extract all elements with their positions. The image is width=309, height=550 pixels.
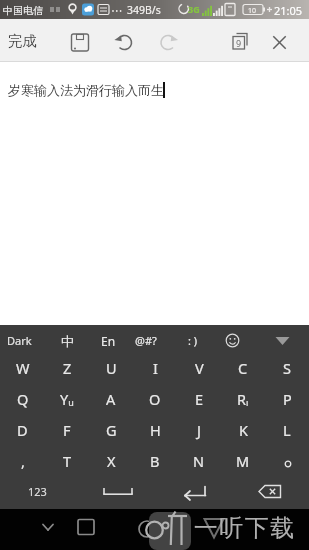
staticText: Rı — [237, 389, 249, 409]
staticText: 岁寒输入法为滑行输入而生 — [8, 82, 164, 98]
button[interactable]: J — [177, 414, 221, 445]
button[interactable]: 一听下载 — [193, 513, 295, 543]
staticText: C — [238, 358, 248, 378]
button[interactable]: S — [265, 352, 309, 383]
staticText: X — [107, 451, 116, 471]
button[interactable]: Yu — [45, 383, 89, 414]
button[interactable]: O — [133, 383, 177, 414]
staticText: M — [236, 451, 250, 471]
button[interactable]: C — [221, 352, 265, 383]
button[interactable]: @#? — [129, 327, 163, 354]
button[interactable] — [217, 327, 247, 354]
staticText: H — [150, 420, 161, 440]
button[interactable]: M — [221, 445, 265, 476]
staticText: Dark — [7, 333, 32, 348]
button[interactable]: G — [89, 414, 133, 445]
button[interactable]: 完成 — [0, 19, 48, 62]
staticText: G — [106, 420, 117, 440]
button[interactable] — [267, 327, 297, 354]
button[interactable]: En — [93, 327, 123, 354]
staticText: 9 — [236, 37, 242, 49]
button[interactable] — [75, 476, 160, 507]
staticText: @#? — [135, 333, 157, 348]
staticText: E — [195, 389, 204, 409]
button[interactable]: 123 — [0, 476, 75, 507]
button[interactable]: L — [265, 414, 309, 445]
button[interactable]: N — [177, 445, 221, 476]
staticText: S — [283, 358, 291, 378]
button[interactable]: , — [0, 445, 45, 476]
staticText: F — [63, 420, 71, 440]
staticText: 123 — [28, 484, 47, 499]
button[interactable]: E — [177, 383, 221, 414]
button[interactable] — [160, 476, 230, 507]
button[interactable]: V — [177, 352, 221, 383]
button[interactable] — [230, 476, 309, 507]
button[interactable] — [28, 515, 68, 545]
button[interactable]: H — [133, 414, 177, 445]
staticText: O — [149, 389, 161, 409]
staticText: 21:05 — [274, 3, 303, 18]
button[interactable]: I — [133, 352, 177, 383]
button[interactable]: F — [45, 414, 89, 445]
staticText: I — [153, 358, 158, 378]
button[interactable]: Z — [45, 352, 89, 383]
button[interactable]: : ) — [178, 327, 208, 354]
button[interactable]: Q — [0, 383, 45, 414]
staticText: Q — [17, 389, 29, 409]
staticText: 10 — [248, 6, 257, 16]
button[interactable] — [149, 512, 191, 550]
button[interactable]: T — [45, 445, 89, 476]
button[interactable]: X — [89, 445, 133, 476]
button[interactable]: P — [265, 383, 309, 414]
staticText: A — [106, 389, 116, 409]
button[interactable] — [265, 445, 309, 476]
button[interactable]: Dark — [1, 327, 37, 354]
button[interactable]: 中 — [52, 327, 82, 354]
staticText: V — [195, 358, 204, 378]
staticText: En — [101, 333, 116, 349]
staticText: K — [239, 420, 248, 440]
staticText: T — [63, 451, 72, 471]
button[interactable] — [66, 515, 106, 545]
staticText: B — [150, 451, 160, 471]
button[interactable]: W — [0, 352, 45, 383]
staticText: 中国电信 — [3, 4, 43, 17]
button[interactable]: Rı — [221, 383, 265, 414]
staticText: 349B/s — [127, 3, 161, 17]
button[interactable]: U — [89, 352, 133, 383]
button[interactable]: D — [0, 414, 45, 445]
button[interactable] — [60, 19, 260, 62]
button[interactable]: A — [89, 383, 133, 414]
button[interactable]: K — [221, 414, 265, 445]
staticText: D — [17, 420, 28, 440]
button[interactable]: B — [133, 445, 177, 476]
staticText: N — [193, 451, 205, 471]
staticText: , — [21, 451, 25, 471]
staticText: J — [197, 420, 201, 440]
staticText: : ) — [188, 333, 198, 348]
staticText: Z — [63, 358, 72, 378]
staticText: W — [16, 358, 30, 378]
staticText: 3G — [188, 3, 200, 15]
staticText: Yu — [60, 389, 74, 409]
staticText: U — [106, 358, 117, 378]
staticText: L — [283, 420, 291, 440]
staticText: 完成 — [8, 32, 37, 50]
staticText: 中 — [61, 333, 74, 349]
staticText: P — [283, 389, 292, 409]
